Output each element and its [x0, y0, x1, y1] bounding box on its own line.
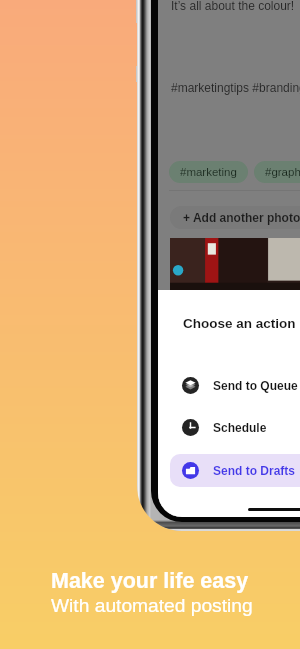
button[interactable]: + Add another photo or video [170, 206, 300, 229]
staticText: Make your life easy [51, 569, 249, 593]
staticText: #graphicdesign [265, 166, 300, 179]
staticText: With automated posting [51, 595, 253, 616]
button[interactable]: #graphicdesign [254, 161, 300, 183]
staticText: #marketingtips #branding [171, 81, 300, 94]
staticText: + Add another photo or video [183, 211, 300, 224]
other: Schedule [182, 419, 199, 436]
staticText: Schedule [213, 421, 267, 434]
staticText: Choose an action [183, 316, 296, 331]
button[interactable]: Send to Queue [170, 369, 300, 402]
button[interactable]: Schedule [170, 411, 300, 444]
staticText: Send to Queue [213, 379, 298, 392]
other: Send to Drafts [182, 462, 199, 479]
staticText: #marketing [180, 166, 237, 179]
button[interactable]: #marketing [169, 161, 248, 183]
staticText: Send to Drafts [213, 464, 296, 477]
other: Send to Queue [182, 377, 199, 394]
staticText: It’s all about the colour! [171, 0, 295, 12]
button[interactable]: Send to Drafts [170, 454, 300, 487]
